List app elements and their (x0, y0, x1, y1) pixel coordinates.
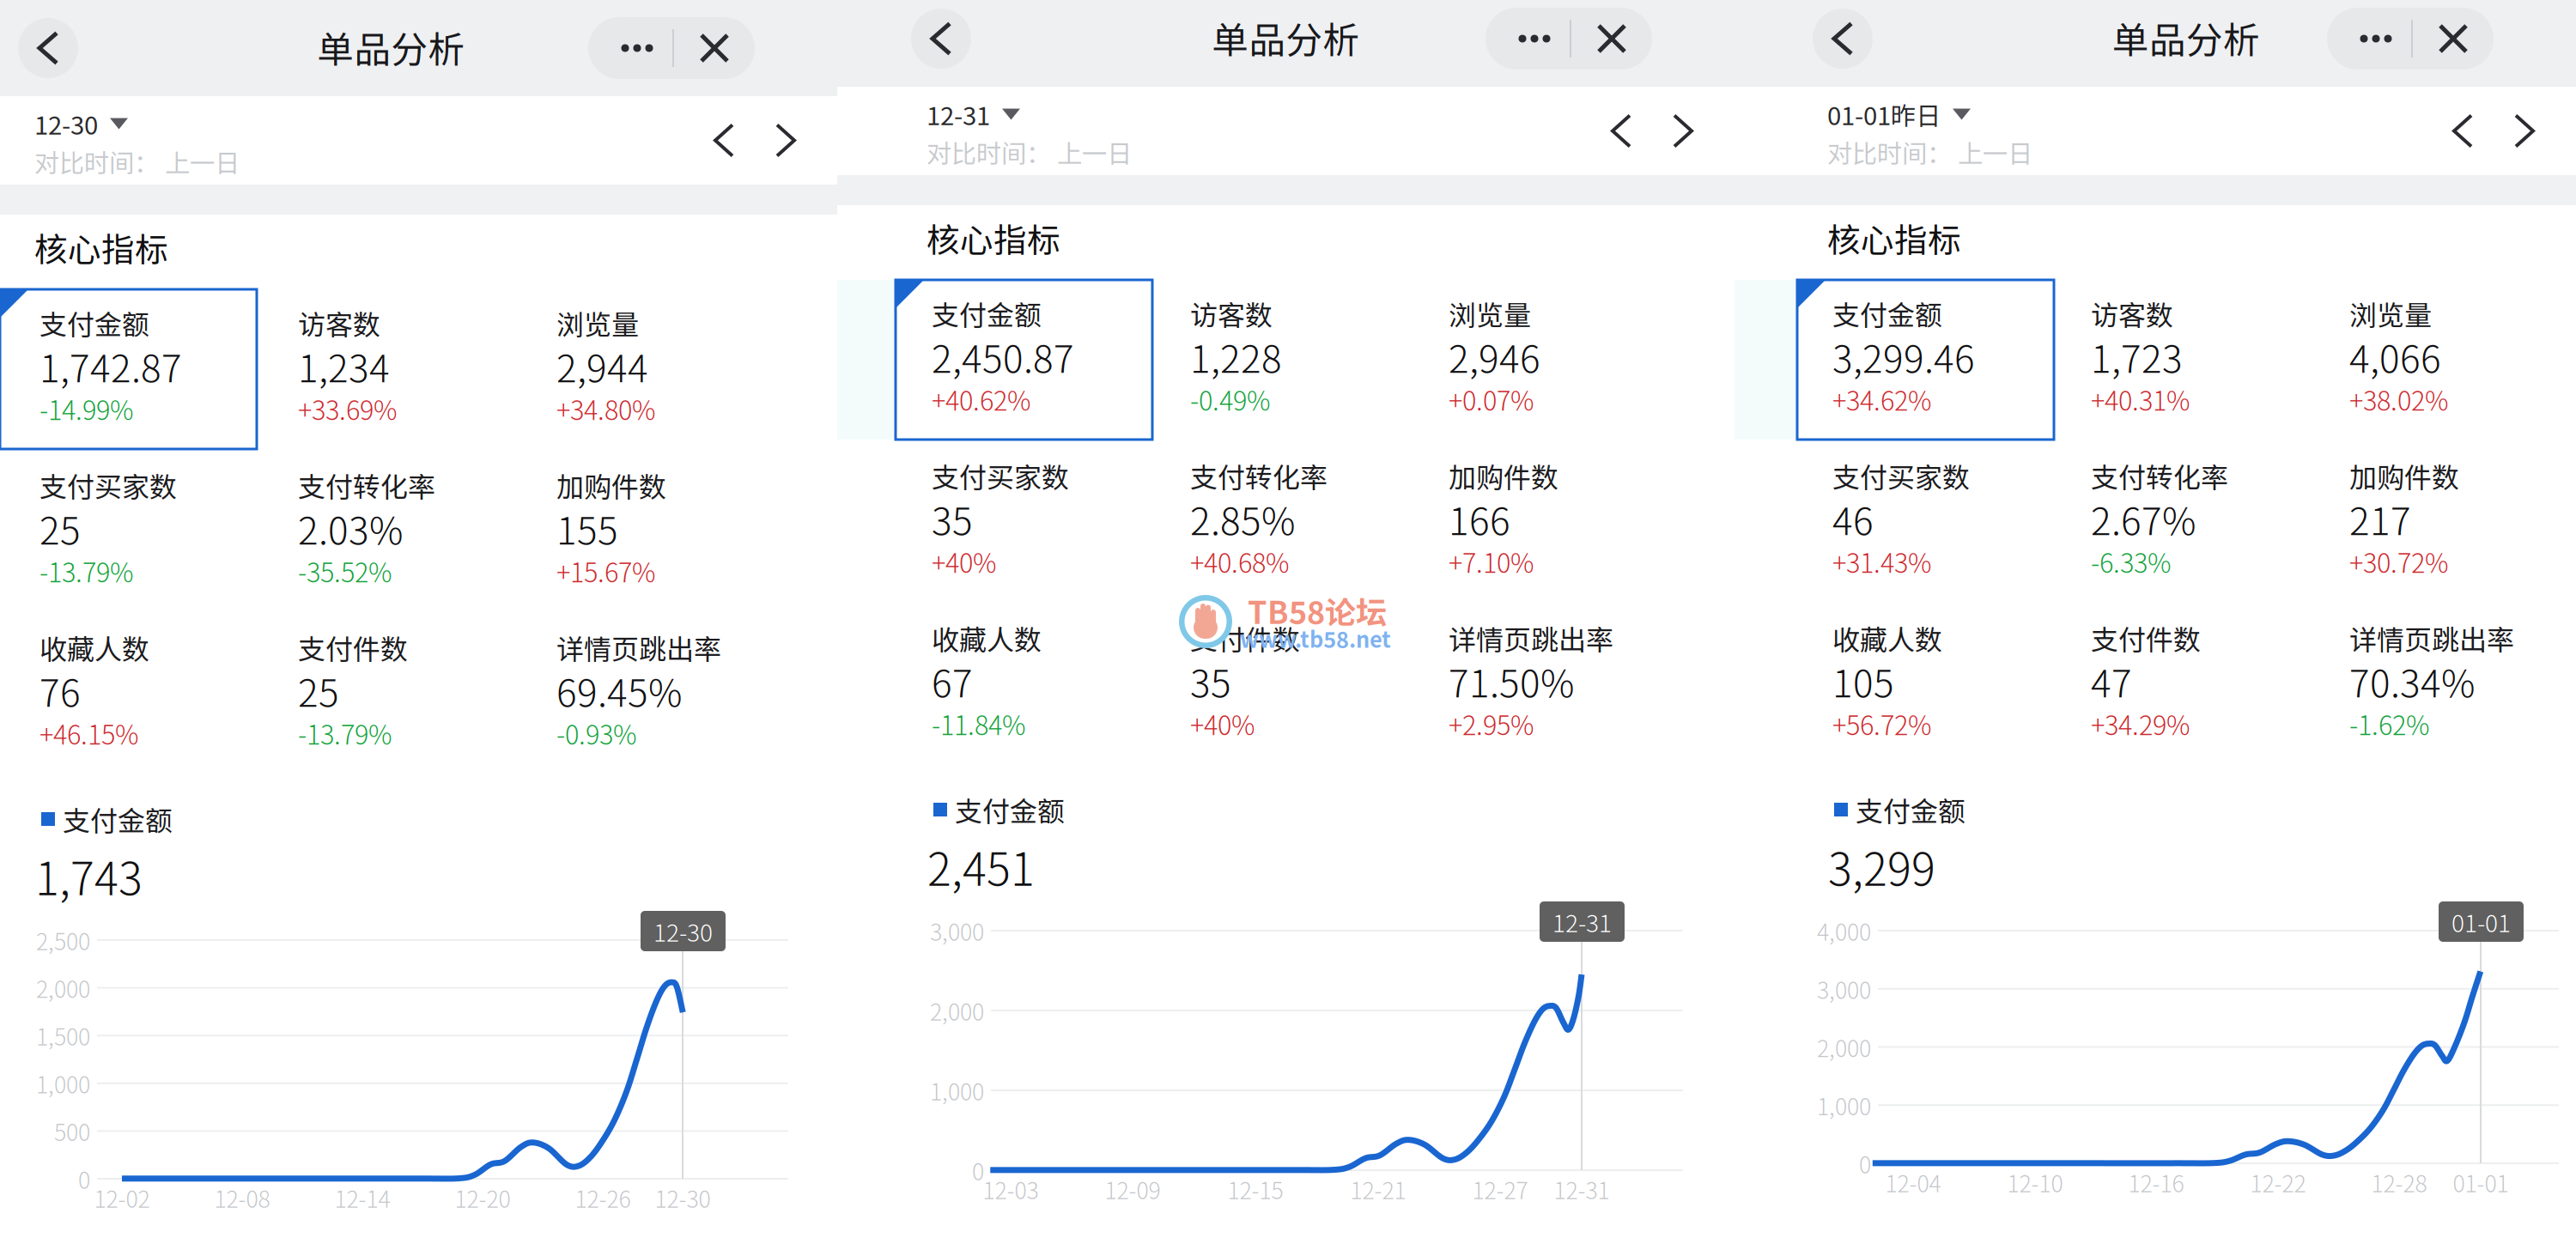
button[interactable]: More (588, 17, 672, 79)
staticText: +46.15% (39, 714, 139, 752)
staticText: 12-21 (1350, 1172, 1406, 1206)
staticText: 35 (932, 491, 973, 546)
staticText: 166 (1449, 491, 1510, 546)
staticText: 12-31 (1552, 904, 1612, 939)
staticText: 12-10 (2007, 1166, 2063, 1199)
staticText: 01-01 (2453, 1166, 2509, 1199)
staticText: 收藏人数 (932, 618, 1042, 658)
staticText: 2,000 (930, 994, 984, 1027)
staticText: 12-20 (455, 1181, 510, 1214)
staticText: 3,299.46 (1832, 329, 1975, 384)
staticText: 支付件数 (298, 627, 408, 667)
button[interactable]: Next day (755, 109, 817, 171)
staticText: 01-01 (2451, 904, 2511, 939)
button[interactable]: Previous day (2432, 100, 2494, 162)
staticText: 12-15 (1227, 1172, 1283, 1206)
staticText: 12-14 (334, 1181, 390, 1214)
staticText: 12-30 (653, 914, 713, 948)
button[interactable]: Back (1813, 9, 1873, 69)
staticText: 访客数 (298, 303, 380, 343)
staticText: 1,742.87 (39, 338, 182, 393)
staticText: 12-03 (983, 1172, 1039, 1206)
staticText: -13.79% (39, 552, 134, 590)
button[interactable]: Close (674, 17, 755, 79)
staticText: 1,743 (35, 843, 143, 908)
staticText: 500 (54, 1114, 90, 1148)
button[interactable]: Previous day (1590, 100, 1652, 162)
staticText: 支付金额 (932, 293, 1042, 333)
staticText: 12-22 (2250, 1166, 2306, 1199)
staticText: 3,000 (1817, 972, 1871, 1005)
staticText: 2.03% (298, 501, 403, 555)
button[interactable]: Close (1571, 8, 1652, 70)
staticText: 浏览量 (1449, 293, 1531, 333)
staticText: 12-31 (1554, 1172, 1610, 1206)
staticText: 12-02 (94, 1181, 150, 1214)
staticText: 支付金额 (63, 799, 173, 839)
staticText: 核心指标 (927, 214, 1060, 262)
staticText: 1,228 (1190, 329, 1282, 384)
staticText: 访客数 (2091, 293, 2173, 333)
button[interactable]: Back (911, 9, 971, 69)
staticText: +31.43% (1832, 542, 1932, 581)
button[interactable]: More (1485, 8, 1570, 70)
staticText: -14.99% (39, 390, 134, 428)
staticText: 3,299 (1828, 834, 1935, 899)
staticText: +40.62% (932, 380, 1031, 418)
staticText: 76 (39, 663, 81, 718)
button[interactable]: Next day (1652, 100, 1714, 162)
staticText: -11.84% (932, 705, 1026, 743)
staticText: 加购件数 (556, 465, 666, 505)
staticText: 217 (2349, 491, 2411, 546)
staticText: 12-09 (1105, 1172, 1160, 1206)
staticText: 对比时间： 上一日 (1827, 134, 2032, 170)
staticText: 详情页跳出率 (2349, 618, 2514, 658)
staticText: 核心指标 (34, 223, 168, 271)
button[interactable]: Close (2413, 8, 2494, 70)
button[interactable]: Back (18, 18, 78, 78)
staticText: 核心指标 (1827, 214, 1961, 262)
staticText: 支付金额 (955, 790, 1065, 829)
staticText: +40.31% (2091, 380, 2190, 418)
staticText: 12-26 (575, 1181, 631, 1214)
staticText: 12-16 (2128, 1166, 2184, 1199)
staticText: 详情页跳出率 (1449, 618, 1613, 658)
staticText: 支付件数 (2091, 618, 2201, 658)
staticText: 12-08 (214, 1181, 270, 1214)
staticText: 支付件数 (1190, 618, 1300, 658)
staticText: 2,944 (556, 338, 648, 393)
staticText: 71.50% (1449, 653, 1574, 708)
staticText: 支付转化率 (298, 465, 435, 505)
button[interactable]: 12-30 (34, 103, 128, 144)
staticText: +2.95% (1449, 705, 1534, 743)
staticText: +56.72% (1832, 705, 1932, 743)
staticText: 支付转化率 (2091, 456, 2228, 495)
staticText: 收藏人数 (1832, 618, 1942, 658)
button[interactable]: More (2327, 8, 2411, 70)
button[interactable]: Previous day (693, 109, 755, 171)
staticText: 支付买家数 (39, 465, 177, 505)
staticText: 67 (932, 653, 973, 708)
button[interactable]: 01-01昨日 (1827, 94, 1971, 135)
staticText: 浏览量 (2349, 293, 2432, 333)
staticText: 加购件数 (1449, 456, 1558, 495)
staticText: 支付买家数 (1832, 456, 1970, 495)
staticText: -35.52% (298, 552, 392, 590)
staticText: -0.93% (556, 714, 637, 752)
staticText: 12-30 (34, 105, 98, 142)
staticText: 1,000 (1817, 1089, 1871, 1122)
staticText: 4,066 (2349, 329, 2441, 384)
button[interactable]: 12-31 (927, 94, 1020, 135)
staticText: 2,451 (927, 834, 1035, 899)
staticText: 2,946 (1449, 329, 1540, 384)
staticText: +33.69% (298, 390, 398, 428)
staticText: 4,000 (1817, 914, 1871, 947)
staticText: -0.49% (1190, 380, 1271, 418)
staticText: 01-01昨日 (1827, 96, 1941, 132)
staticText: 单品分析 (317, 21, 465, 74)
staticText: 3,000 (930, 914, 984, 947)
staticText: 2.85% (1190, 491, 1295, 546)
staticText: +40% (932, 542, 997, 581)
staticText: 访客数 (1190, 293, 1273, 333)
button[interactable]: Next day (2494, 100, 2555, 162)
